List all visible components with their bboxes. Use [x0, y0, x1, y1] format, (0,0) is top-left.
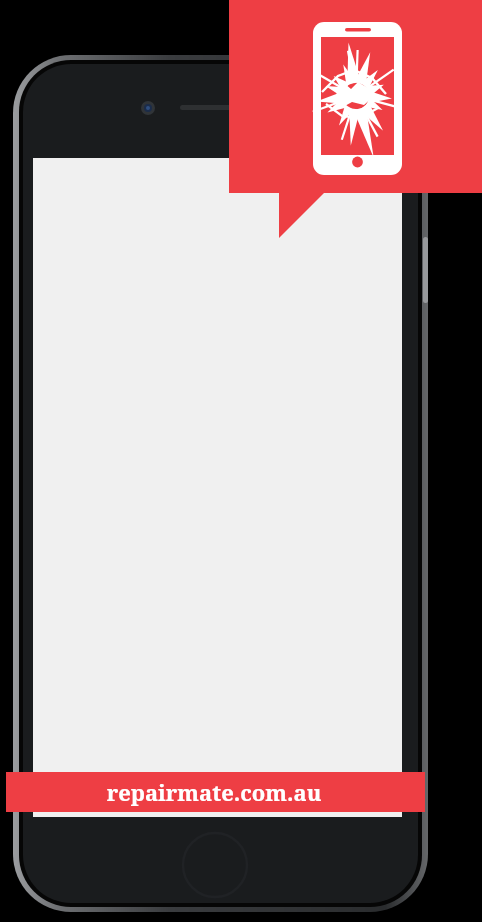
- button[interactable]: RepairMate broken phone repair: [0, 0, 482, 922]
